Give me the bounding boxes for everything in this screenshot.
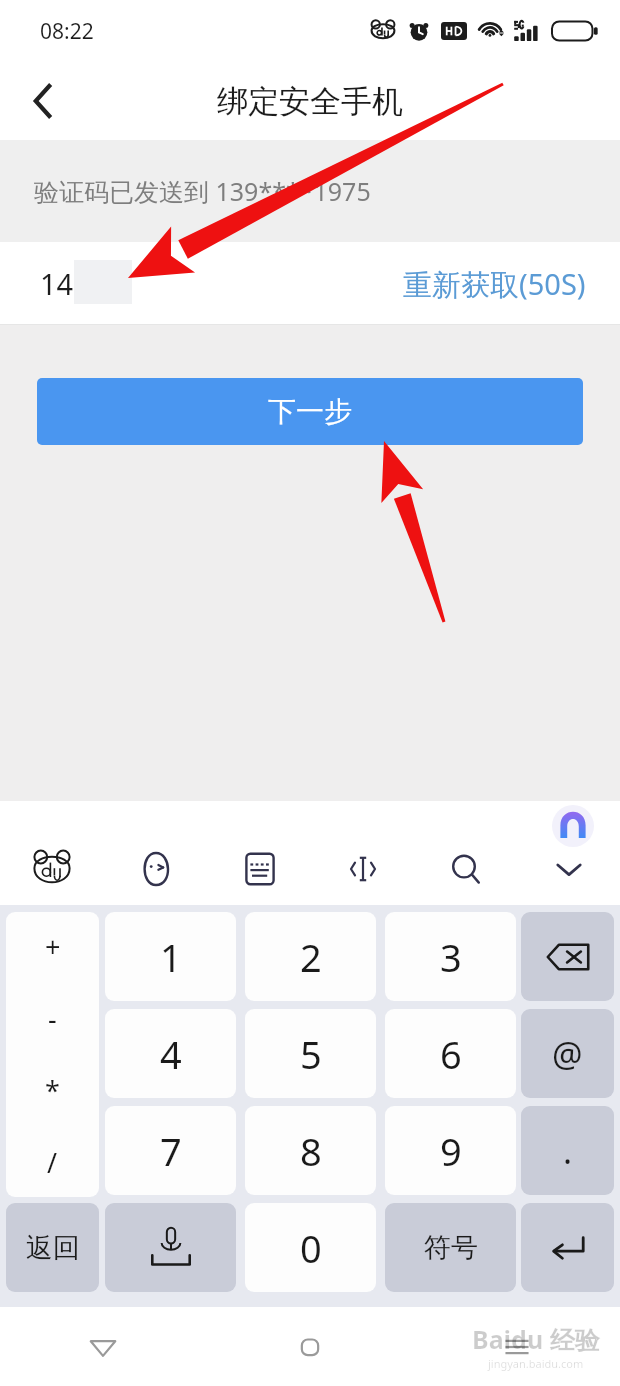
staticText: 3 bbox=[440, 931, 462, 983]
button[interactable]: Back bbox=[0, 1307, 206, 1386]
button[interactable]: Text editing bbox=[311, 833, 414, 905]
staticText: * bbox=[45, 1072, 60, 1109]
staticText: jingyan.baidu.com bbox=[488, 1356, 584, 1371]
staticText: 9 bbox=[440, 1125, 462, 1177]
button[interactable]: 重新获取(50S) bbox=[403, 264, 586, 304]
button[interactable]: Symbols plus minus times divide bbox=[6, 912, 99, 1197]
staticText: 4 bbox=[160, 1028, 182, 1080]
staticText: 绑定安全手机 bbox=[217, 82, 403, 121]
staticText: 14 bbox=[40, 264, 74, 303]
button[interactable]: . bbox=[521, 1106, 614, 1195]
staticText: 5 bbox=[300, 1028, 322, 1080]
button[interactable]: 符号 bbox=[385, 1203, 516, 1292]
staticText: 下一步 bbox=[268, 394, 352, 429]
button[interactable]: Emoji bbox=[104, 833, 208, 905]
button[interactable]: 8 bbox=[245, 1106, 376, 1195]
button[interactable]: 1 bbox=[105, 912, 236, 1001]
button[interactable]: Enter bbox=[521, 1203, 614, 1292]
button[interactable]: 0 bbox=[245, 1203, 376, 1292]
staticText: + bbox=[45, 928, 61, 965]
staticText: 0 bbox=[300, 1222, 322, 1274]
button[interactable]: Keyboard layout bbox=[208, 833, 311, 905]
button[interactable]: 6 bbox=[385, 1009, 516, 1098]
staticText: 2 bbox=[300, 931, 322, 983]
button[interactable]: 5 bbox=[245, 1009, 376, 1098]
staticText: 6 bbox=[440, 1028, 462, 1080]
button[interactable]: 3 bbox=[385, 912, 516, 1001]
staticText: @ bbox=[552, 1031, 583, 1077]
staticText: 1 bbox=[160, 931, 182, 983]
button[interactable]: 7 bbox=[105, 1106, 236, 1195]
button[interactable]: AI assistant bbox=[552, 805, 594, 847]
button[interactable]: Baidu input bbox=[0, 833, 104, 905]
staticText: 重新获取(50S) bbox=[403, 264, 586, 304]
staticText: 8 bbox=[300, 1125, 322, 1177]
button[interactable]: 9 bbox=[385, 1106, 516, 1195]
button[interactable]: Search bbox=[414, 833, 517, 905]
staticText: Baidu 经验 bbox=[472, 1322, 600, 1356]
button[interactable]: Voice input and space bbox=[105, 1203, 236, 1292]
staticText: 验证码已发送到 139****1975 bbox=[34, 174, 371, 208]
button[interactable]: Hide keyboard bbox=[517, 833, 620, 905]
staticText: - bbox=[48, 1000, 57, 1037]
button[interactable]: Home bbox=[206, 1307, 413, 1386]
staticText: 08:22 bbox=[40, 17, 94, 46]
button[interactable]: Recent apps bbox=[413, 1307, 620, 1386]
staticText: 返回 bbox=[26, 1231, 80, 1265]
button[interactable]: 下一步 bbox=[37, 378, 583, 445]
staticText: / bbox=[47, 1144, 58, 1181]
button[interactable]: 返回 bbox=[6, 1203, 99, 1292]
button[interactable]: 2 bbox=[245, 912, 376, 1001]
button[interactable]: 4 bbox=[105, 1009, 236, 1098]
staticText: 7 bbox=[160, 1125, 182, 1177]
staticText: 符号 bbox=[424, 1231, 478, 1265]
button[interactable]: Back bbox=[0, 62, 86, 140]
button[interactable]: Backspace bbox=[521, 912, 614, 1001]
staticText: . bbox=[563, 1128, 573, 1174]
button[interactable]: @ bbox=[521, 1009, 614, 1098]
